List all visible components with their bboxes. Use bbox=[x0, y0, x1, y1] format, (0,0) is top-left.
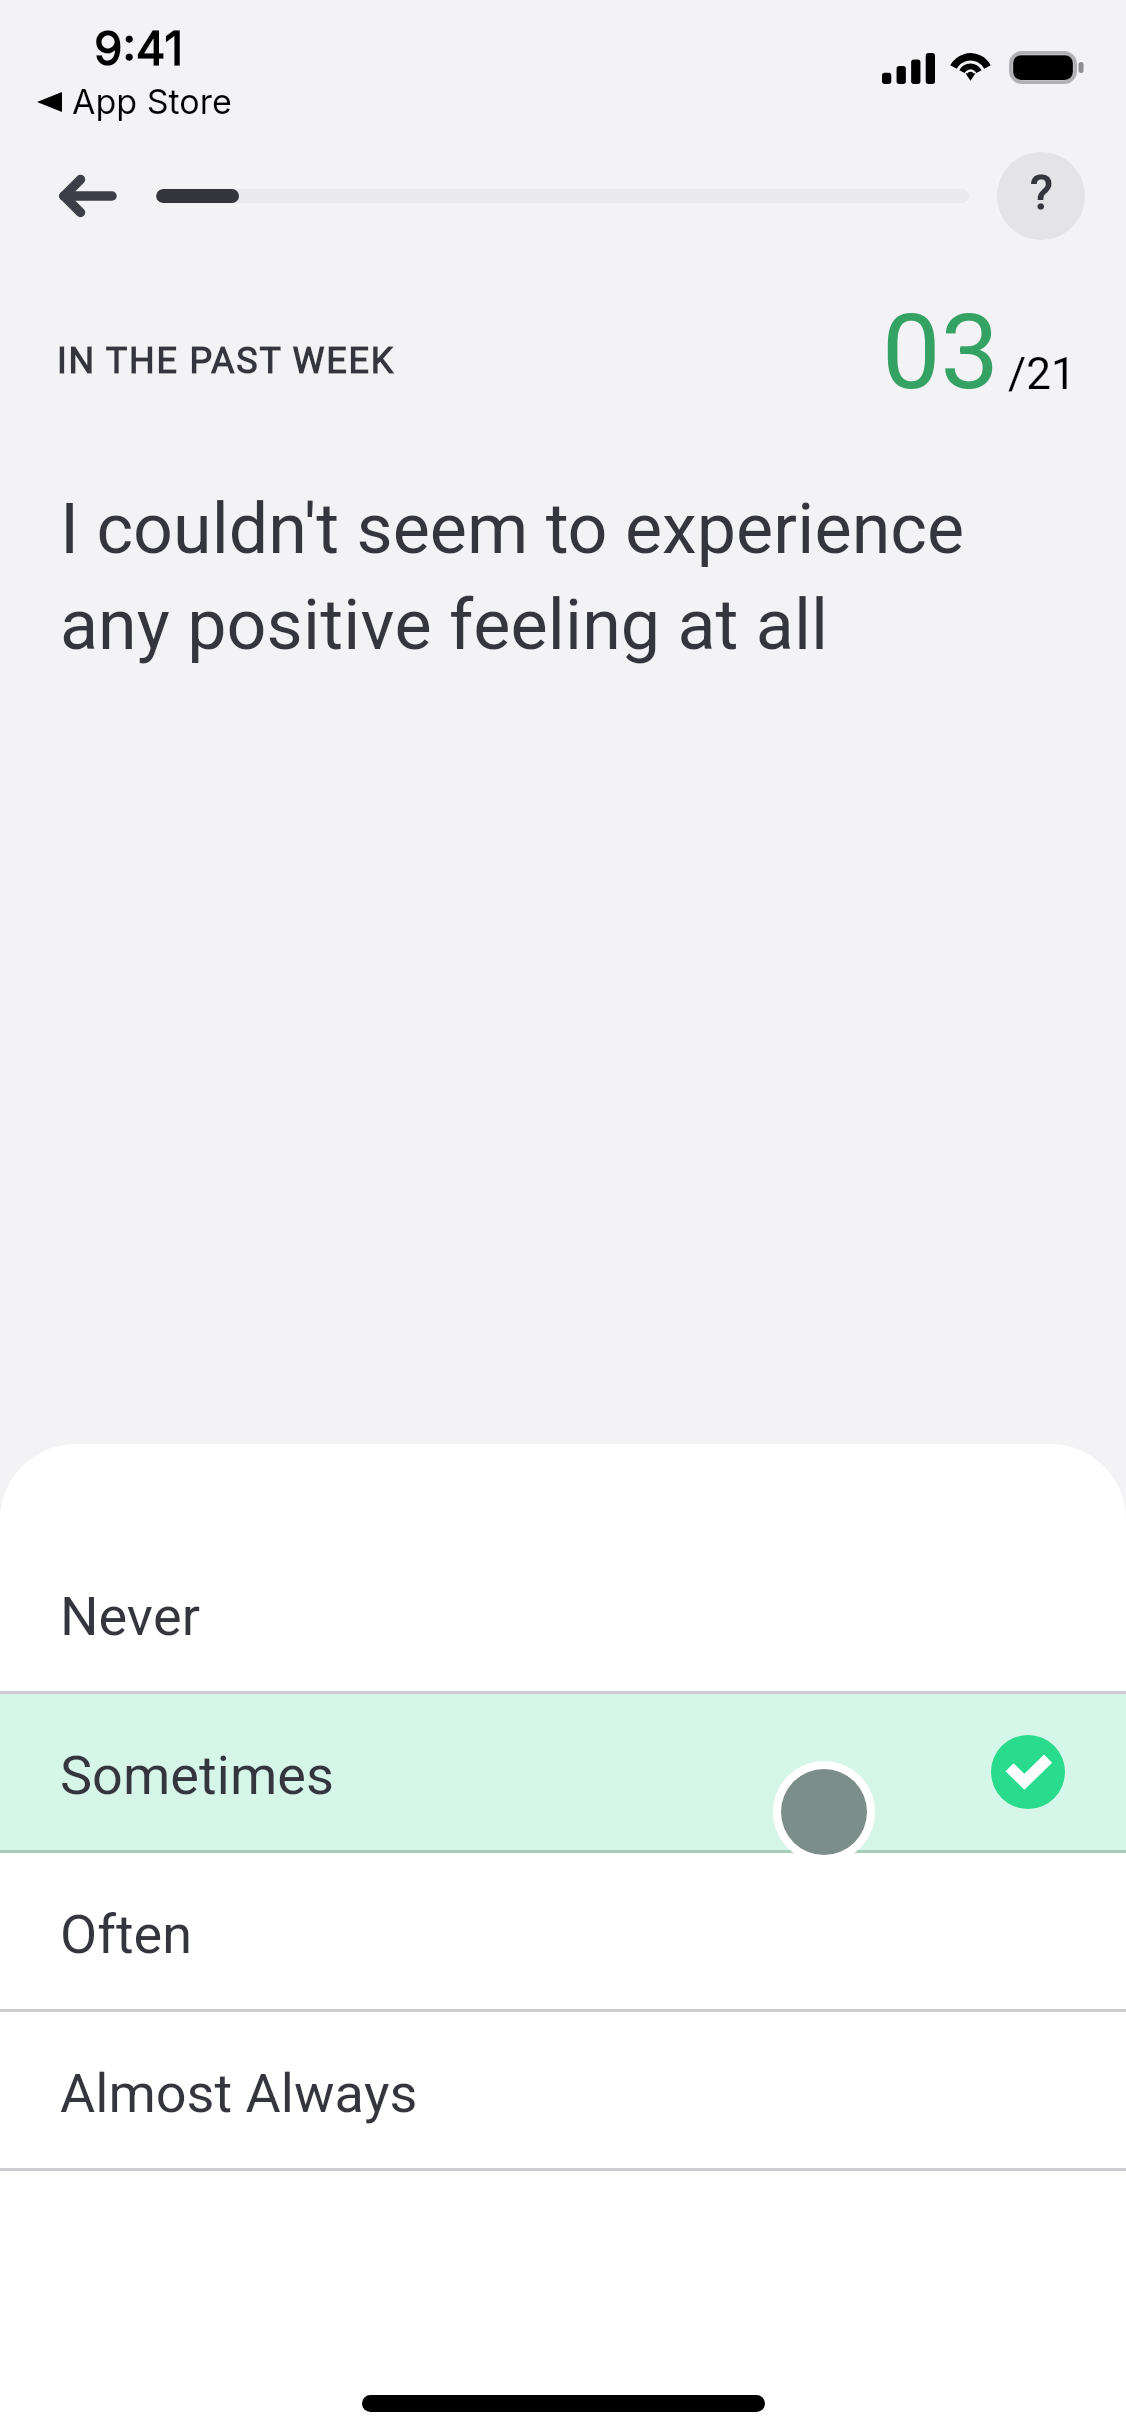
staticText: Never bbox=[60, 1578, 200, 1657]
staticText: Sometimes bbox=[60, 1737, 334, 1816]
staticText: Almost Always bbox=[60, 2055, 418, 2134]
staticText: I couldn't seem to experience any positi… bbox=[60, 480, 1010, 678]
staticText: Often bbox=[60, 1896, 193, 1975]
button[interactable]: Back bbox=[30, 152, 122, 240]
button[interactable]: Almost Always bbox=[0, 2012, 1126, 2168]
button[interactable]: Sometimes bbox=[0, 1694, 1126, 1850]
button[interactable]: Help bbox=[997, 152, 1085, 240]
staticText: 03 bbox=[882, 279, 999, 432]
staticText: IN THE PAST WEEK bbox=[57, 335, 396, 388]
staticText: ? bbox=[1030, 159, 1053, 230]
staticText: 9:41 bbox=[94, 20, 184, 76]
button[interactable]: Often bbox=[0, 1853, 1126, 2009]
button[interactable]: Never bbox=[0, 1535, 1126, 1691]
staticText: App Store bbox=[72, 81, 232, 122]
staticText: /21 bbox=[1008, 343, 1076, 408]
